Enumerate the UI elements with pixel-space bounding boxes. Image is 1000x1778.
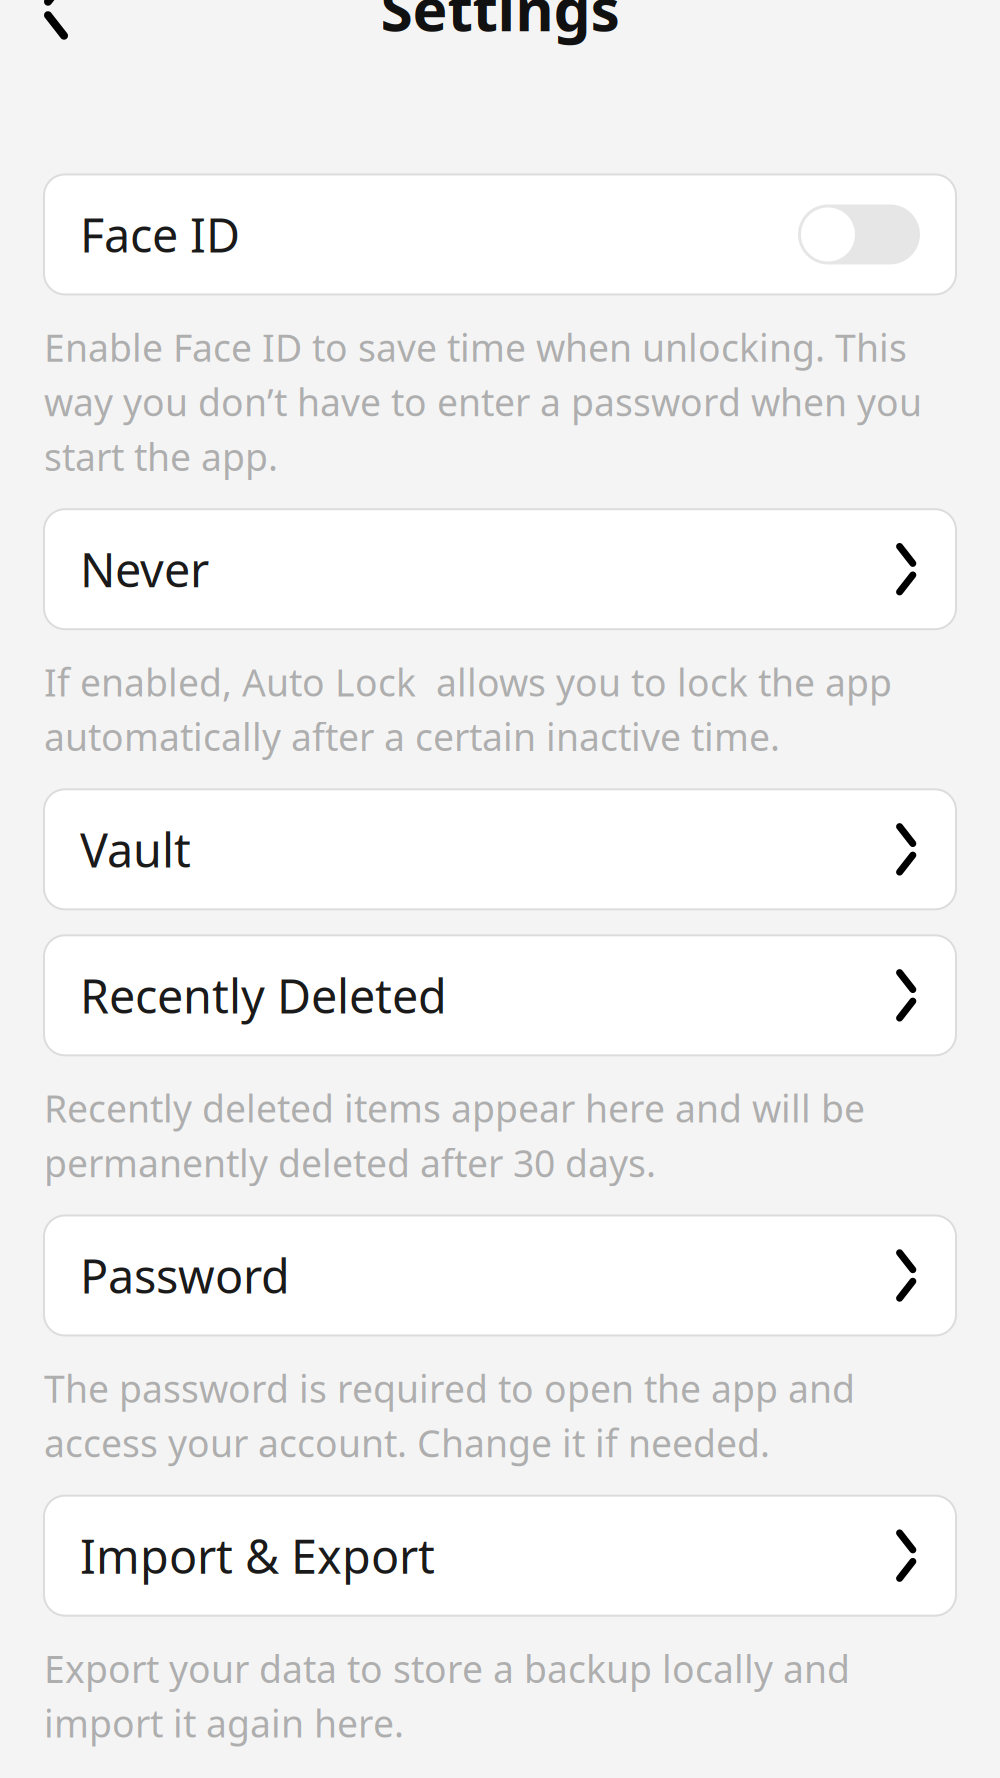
staticText: Enable Face ID to save time when unlocki…: [44, 322, 922, 481]
staticText: Import & Export: [80, 1525, 435, 1587]
button[interactable]: Recently Deleted: [44, 935, 956, 1055]
staticText: Password: [80, 1244, 290, 1306]
staticText: Recently deleted items appear here and w…: [44, 1083, 865, 1187]
staticText: Never: [80, 538, 209, 600]
staticText: Face ID: [80, 203, 240, 265]
button[interactable]: Never: [44, 509, 956, 629]
button[interactable]: Vault: [44, 789, 956, 909]
staticText: Vault: [80, 818, 191, 880]
button[interactable]: Face ID: [44, 174, 956, 294]
staticText: Export your data to store a backup local…: [44, 1644, 850, 1748]
button[interactable]: Import & Export: [44, 1496, 956, 1616]
staticText: Settings: [380, 0, 619, 47]
button[interactable]: Password: [44, 1215, 956, 1335]
button[interactable]: Back: [18, 0, 94, 46]
staticText: If enabled, Auto Lock allows you to lock…: [44, 657, 892, 761]
staticText: The password is required to open the app…: [44, 1363, 855, 1468]
staticText: Recently Deleted: [80, 964, 447, 1026]
